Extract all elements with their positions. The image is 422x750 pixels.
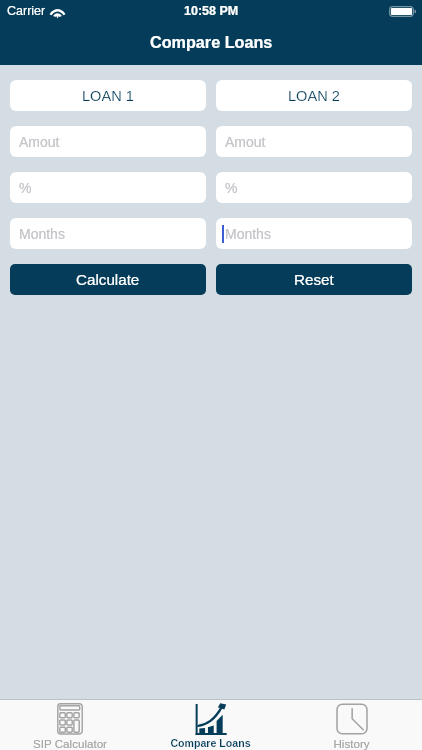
staticText: Compare Loans [150, 33, 273, 51]
button[interactable]: LOAN 1 [10, 80, 206, 111]
staticText: SIP Calculator [33, 737, 107, 750]
staticText: Carrier [7, 4, 46, 18]
staticText: Calculate [76, 271, 140, 288]
button[interactable]: % [10, 172, 206, 203]
staticText: LOAN 1 [82, 88, 134, 104]
staticText: LOAN 2 [288, 88, 340, 104]
button[interactable]: Amout [216, 126, 412, 157]
staticText: 10:58 PM [184, 4, 239, 18]
staticText: % [225, 180, 238, 196]
staticText: Compare Loans [170, 737, 251, 749]
button[interactable]: % [216, 172, 412, 203]
button[interactable]: SIP Calculator [33, 700, 107, 750]
staticText: Months [225, 226, 271, 242]
button[interactable]: Months [10, 218, 206, 249]
button[interactable]: Compare Loans [170, 700, 251, 749]
button[interactable]: History [333, 700, 370, 750]
staticText: Amout [19, 134, 60, 150]
staticText: Reset [294, 271, 334, 288]
staticText: Months [19, 226, 65, 242]
staticText: History [333, 737, 370, 750]
button[interactable]: Amout [10, 126, 206, 157]
button[interactable]: Calculate [10, 264, 206, 295]
button[interactable]: LOAN 2 [216, 80, 412, 111]
button[interactable]: Reset [216, 264, 412, 295]
staticText: % [19, 180, 32, 196]
staticText: Amout [225, 134, 266, 150]
button[interactable]: Months [216, 218, 412, 249]
